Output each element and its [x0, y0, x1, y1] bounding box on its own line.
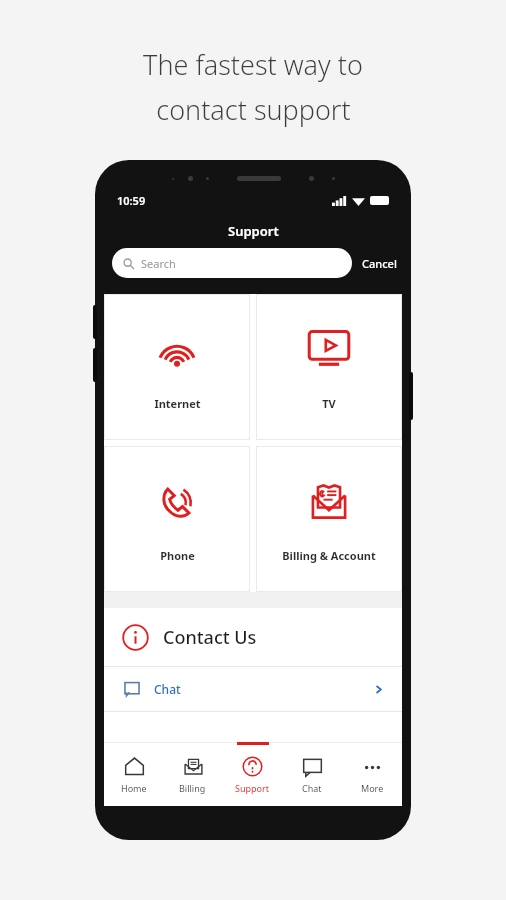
staticText: Search [141, 256, 176, 271]
button[interactable]: Home [104, 742, 163, 806]
button[interactable]: Internet [105, 295, 249, 439]
staticText: 10:59 [117, 193, 146, 208]
staticText: Chat [302, 782, 322, 794]
staticText: Contact Us [163, 625, 257, 650]
button[interactable]: TV [257, 295, 401, 439]
button[interactable]: More [342, 742, 402, 806]
staticText: Internet [154, 396, 201, 411]
button[interactable]: Chat [282, 742, 342, 806]
staticText: Billing [179, 782, 206, 794]
staticText: TV [322, 396, 336, 411]
staticText: Home [121, 782, 147, 794]
staticText: Phone [160, 548, 195, 563]
button[interactable]: Search [112, 248, 352, 278]
button[interactable]: Contact Us [104, 608, 402, 666]
staticText: Support [235, 782, 269, 794]
button[interactable]: Support [222, 742, 282, 806]
button[interactable]: Cancel [362, 256, 397, 271]
staticText: Support [228, 222, 279, 240]
button[interactable]: Billing & Account [257, 447, 401, 591]
button[interactable]: Phone [105, 447, 249, 591]
staticText: contact support [156, 91, 351, 128]
button[interactable]: Billing [163, 742, 222, 806]
staticText: Cancel [362, 256, 397, 271]
staticText: The fastest way to [143, 46, 363, 83]
button[interactable]: Chat [104, 667, 402, 711]
staticText: Chat [154, 681, 181, 697]
staticText: Billing & Account [282, 548, 376, 563]
staticText: More [361, 782, 384, 794]
